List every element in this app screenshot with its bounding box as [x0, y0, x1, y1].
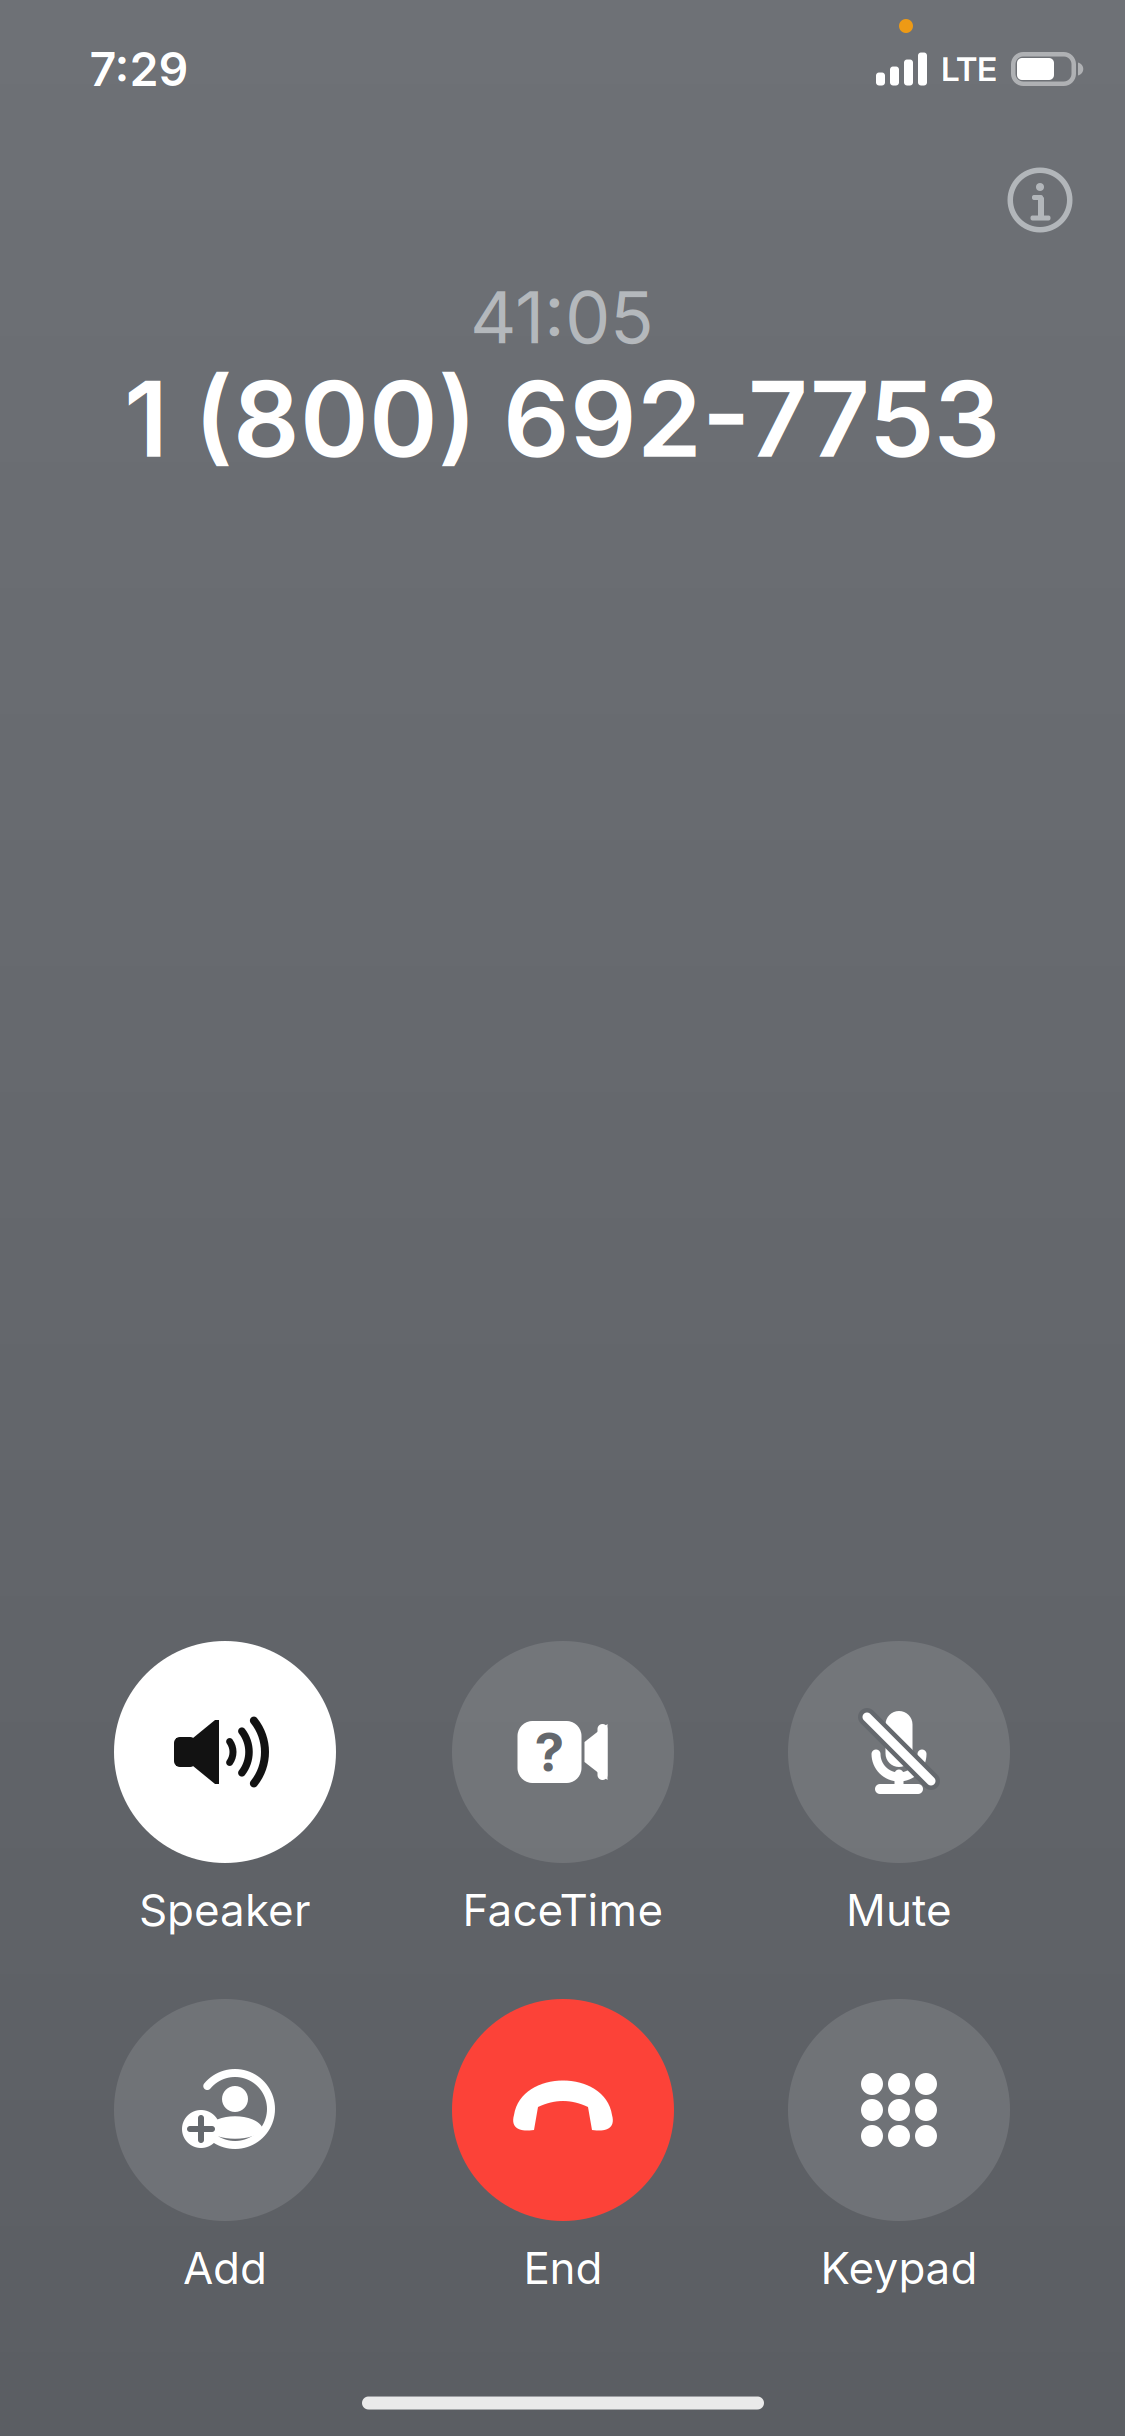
button[interactable]: Add — [70, 1999, 380, 2315]
staticText: Add — [183, 2241, 267, 2295]
button[interactable]: Keypad — [744, 1999, 1054, 2315]
button[interactable]: Speaker — [70, 1641, 380, 1957]
staticText: 1 (800) 692-7753 — [124, 356, 1000, 482]
staticText: End — [523, 2241, 602, 2295]
button[interactable]: ? — [408, 1641, 718, 1957]
staticText: Mute — [846, 1883, 952, 1937]
button[interactable]: End — [408, 1999, 718, 2315]
staticText: FaceTime — [462, 1883, 663, 1937]
button[interactable]: Mute — [744, 1641, 1054, 1957]
staticText: 7:29 — [89, 41, 188, 97]
staticText: ? — [534, 1720, 564, 1784]
staticText: Speaker — [139, 1883, 311, 1937]
staticText: 41:05 — [470, 273, 654, 360]
button[interactable]: Call Info — [980, 140, 1100, 260]
staticText: Keypad — [820, 2241, 977, 2295]
staticText: LTE — [941, 49, 997, 89]
